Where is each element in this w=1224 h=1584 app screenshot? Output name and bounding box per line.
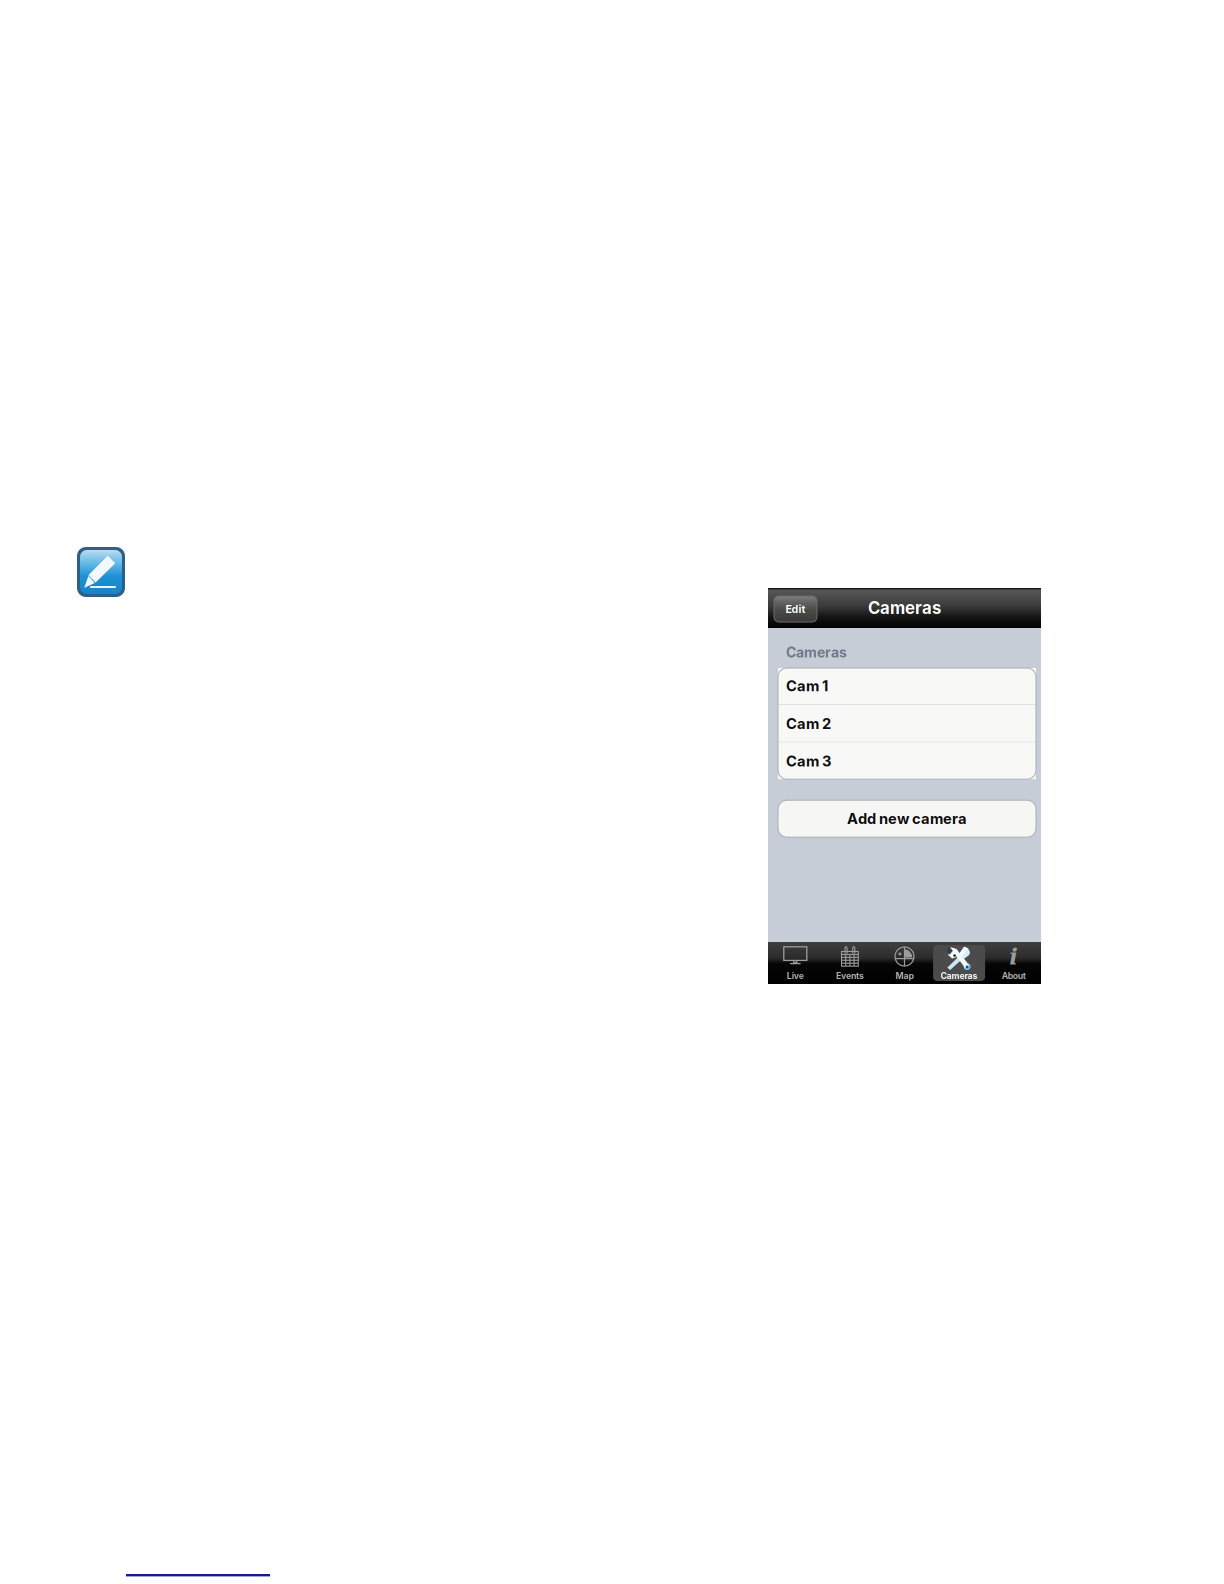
button[interactable]: Events (823, 942, 877, 984)
staticText: Events (836, 970, 864, 981)
button[interactable]: Cam 3 (778, 743, 1036, 779)
button[interactable]: Edit (774, 596, 817, 622)
staticText: Live (787, 970, 804, 981)
staticText: Cam 1 (786, 677, 828, 695)
button[interactable]: Live (768, 942, 823, 984)
staticText: Map (895, 970, 913, 981)
button[interactable]: Cameras (932, 942, 986, 984)
staticText: Cameras (786, 644, 847, 661)
button[interactable]: Map (877, 942, 932, 984)
button[interactable]: Add new camera (778, 800, 1036, 837)
staticText: Cam 3 (786, 752, 831, 770)
button[interactable]: About (986, 942, 1041, 984)
staticText: Cam 2 (786, 715, 831, 732)
staticText: Edit (785, 602, 805, 615)
button[interactable]: Cam 2 (778, 706, 1036, 742)
button[interactable]: Cam 1 (778, 668, 1036, 704)
staticText: Add new camera (847, 810, 967, 827)
staticText: Cameras (941, 970, 978, 981)
staticText: About (1002, 970, 1026, 981)
staticText: i (1009, 943, 1018, 970)
staticText: Cameras (868, 598, 941, 618)
